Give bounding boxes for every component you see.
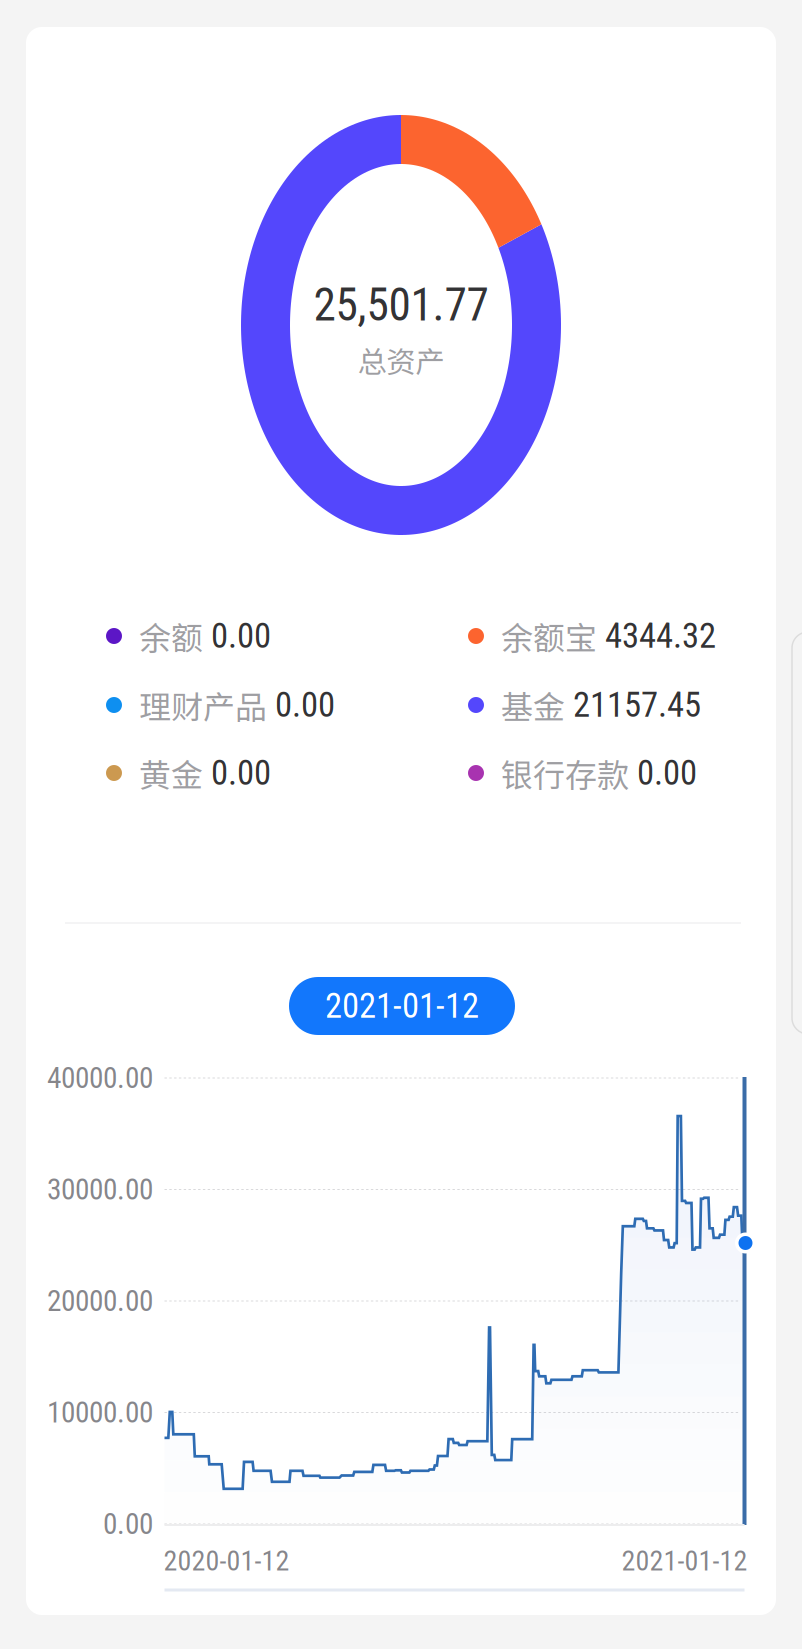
staticText: 30000.00 [47, 1172, 153, 1207]
staticText: 理财产品 [139, 682, 267, 728]
button[interactable]: 理财产品 [106, 682, 406, 728]
staticText: 余额 [139, 613, 203, 659]
staticText: 25,501.77 [313, 278, 488, 331]
button[interactable]: 2021-01-12 [289, 977, 515, 1035]
staticText: 2020-01-12 [163, 1545, 289, 1577]
staticText: 0.00 [275, 685, 335, 725]
button[interactable]: 银行存款 [468, 750, 768, 796]
staticText: 0.00 [211, 616, 271, 656]
staticText: 40000.00 [47, 1061, 153, 1095]
staticText: 0.00 [211, 753, 271, 793]
staticText: 4344.32 [605, 616, 716, 656]
button[interactable]: 余额宝 [468, 613, 768, 659]
button[interactable]: 基金 [468, 682, 768, 728]
staticText: 基金 [501, 682, 565, 728]
staticText: 20000.00 [47, 1284, 153, 1318]
staticText: 余额宝 [501, 613, 597, 659]
staticText: 银行存款 [501, 750, 629, 796]
staticText: 黄金 [139, 750, 203, 796]
staticText: 0.00 [637, 753, 697, 793]
staticText: 总资产 [357, 339, 444, 381]
staticText: 2021-01-12 [325, 986, 479, 1026]
button[interactable]: 黄金 [106, 750, 406, 796]
staticText: 21157.45 [573, 685, 701, 725]
staticText: 2021-01-12 [621, 1545, 747, 1577]
button[interactable]: 余额 [106, 613, 406, 659]
button[interactable]: Total assets 25,501.77 [241, 115, 561, 535]
staticText: 0.00 [103, 1507, 153, 1541]
staticText: 10000.00 [47, 1395, 153, 1430]
